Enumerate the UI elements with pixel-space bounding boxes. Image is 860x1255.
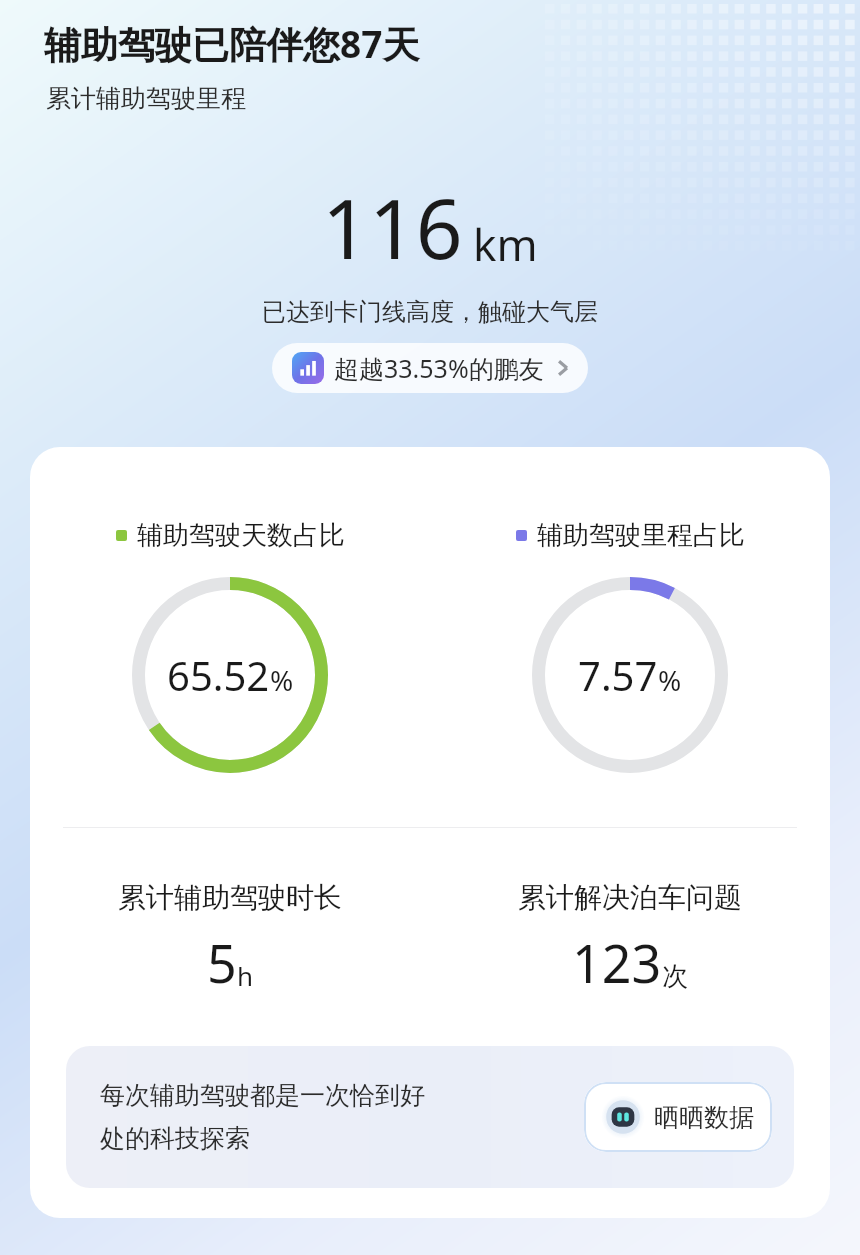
staticText: 辅助驾驶天数占比	[137, 519, 345, 552]
staticText: 123	[572, 927, 662, 998]
button[interactable]: 晒晒数据	[584, 1082, 772, 1152]
staticText: 7.57	[578, 648, 658, 702]
staticText: 处的科技探索	[100, 1123, 250, 1154]
staticText: 辅助驾驶里程占比	[537, 519, 745, 552]
staticText: 5	[207, 927, 237, 998]
staticText: 已达到卡门线高度，触碰大气层	[262, 297, 598, 327]
button[interactable]: 超越33.53%的鹏友	[272, 343, 588, 393]
staticText: h	[237, 958, 254, 993]
staticText: 65.52	[167, 648, 270, 702]
staticText: 累计解决泊车问题	[518, 880, 742, 915]
staticText: 每次辅助驾驶都是一次恰到好	[100, 1080, 425, 1111]
staticText: km	[473, 214, 538, 274]
staticText: 次	[662, 960, 688, 993]
staticText: 超越33.53%的鹏友	[334, 351, 544, 385]
staticText: %	[658, 661, 682, 699]
staticText: 116	[322, 171, 463, 283]
staticText: 累计辅助驾驶时长	[118, 880, 342, 915]
staticText: 晒晒数据	[654, 1102, 754, 1133]
staticText: 累计辅助驾驶里程	[46, 83, 246, 114]
other: 查看详情	[554, 355, 572, 381]
staticText: %	[270, 661, 294, 699]
staticText: 辅助驾驶已陪伴您87天	[44, 18, 420, 69]
